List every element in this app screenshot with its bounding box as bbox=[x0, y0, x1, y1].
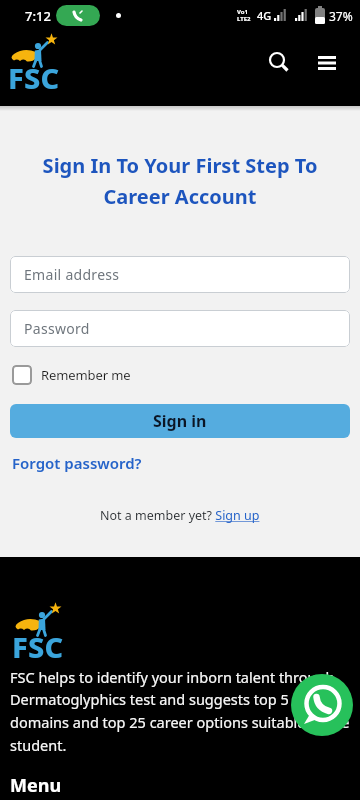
staticText: FSC bbox=[12, 627, 64, 666]
button[interactable]: Email address bbox=[10, 256, 350, 293]
staticText: Password bbox=[24, 319, 90, 338]
staticText: 4G bbox=[257, 8, 272, 23]
button[interactable]: Forgot password? bbox=[12, 453, 142, 473]
button[interactable] bbox=[263, 46, 295, 78]
button[interactable]: Sign in bbox=[10, 404, 350, 438]
staticText: Remember me bbox=[41, 366, 131, 384]
staticText: Menu bbox=[10, 773, 62, 798]
button[interactable]: Remember me bbox=[12, 365, 131, 385]
button[interactable]: Not a member yet? Sign up bbox=[100, 507, 260, 524]
staticText: FSC bbox=[8, 58, 60, 97]
staticText: Sign In To Your First Step To Career Acc… bbox=[0, 152, 360, 210]
staticText: 37% bbox=[329, 8, 353, 24]
staticText: Email address bbox=[24, 265, 120, 284]
staticText: Sign in bbox=[153, 410, 207, 432]
staticText: FSC helps to identify your inborn talent… bbox=[10, 667, 350, 755]
button[interactable]: FSC bbox=[8, 33, 68, 89]
button[interactable] bbox=[312, 48, 342, 78]
button[interactable] bbox=[291, 674, 353, 736]
staticText: Vo1 LTE2 bbox=[237, 8, 251, 23]
staticText: 7:12 bbox=[25, 7, 51, 25]
button[interactable]: Password bbox=[10, 310, 350, 347]
